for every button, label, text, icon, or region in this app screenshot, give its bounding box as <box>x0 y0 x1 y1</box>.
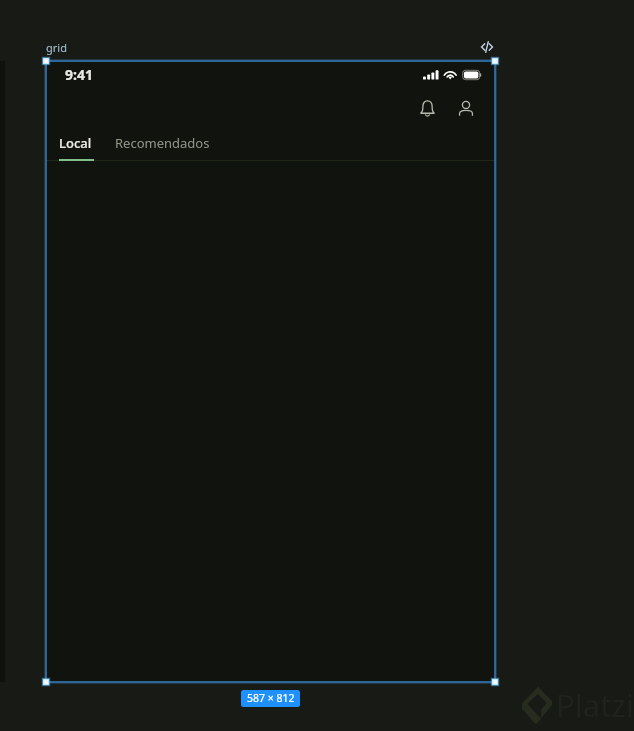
button[interactable]: Local <box>56 130 97 161</box>
staticText: Local <box>59 134 92 152</box>
staticText: 587 × 812 <box>247 691 295 705</box>
staticText: 9:41 <box>65 65 93 84</box>
button[interactable]: View code <box>479 39 495 55</box>
staticText: Recomendados <box>115 134 210 152</box>
button[interactable]: Recomendados <box>112 130 207 161</box>
staticText: grid <box>46 40 67 55</box>
button[interactable]: Notifications <box>411 92 443 124</box>
button[interactable]: Profile <box>450 92 482 124</box>
